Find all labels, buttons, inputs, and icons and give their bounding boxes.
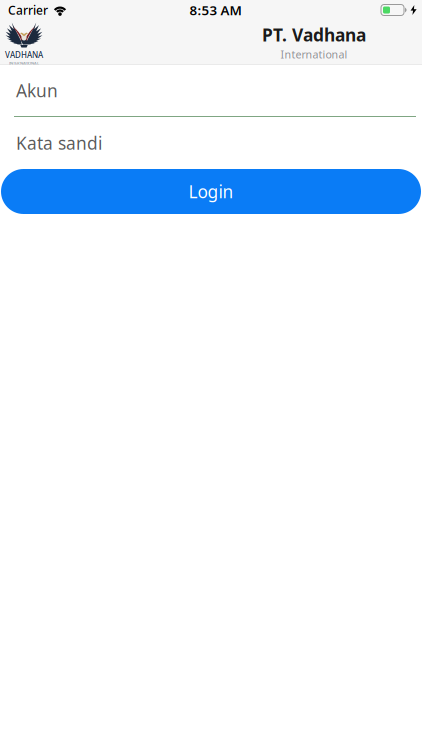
staticText: PT. Vadhana xyxy=(262,23,366,46)
button[interactable]: Login xyxy=(1,169,421,214)
staticText: Kata sandi xyxy=(16,131,102,154)
staticText: INTERNATIONAL xyxy=(9,61,39,66)
staticText: 8:53 AM xyxy=(189,1,241,19)
staticText: Akun xyxy=(16,79,58,102)
staticText: International xyxy=(280,47,347,61)
staticText: Login xyxy=(188,180,233,203)
staticText: VADHANA xyxy=(5,49,43,60)
staticText: Carrier xyxy=(8,2,48,18)
